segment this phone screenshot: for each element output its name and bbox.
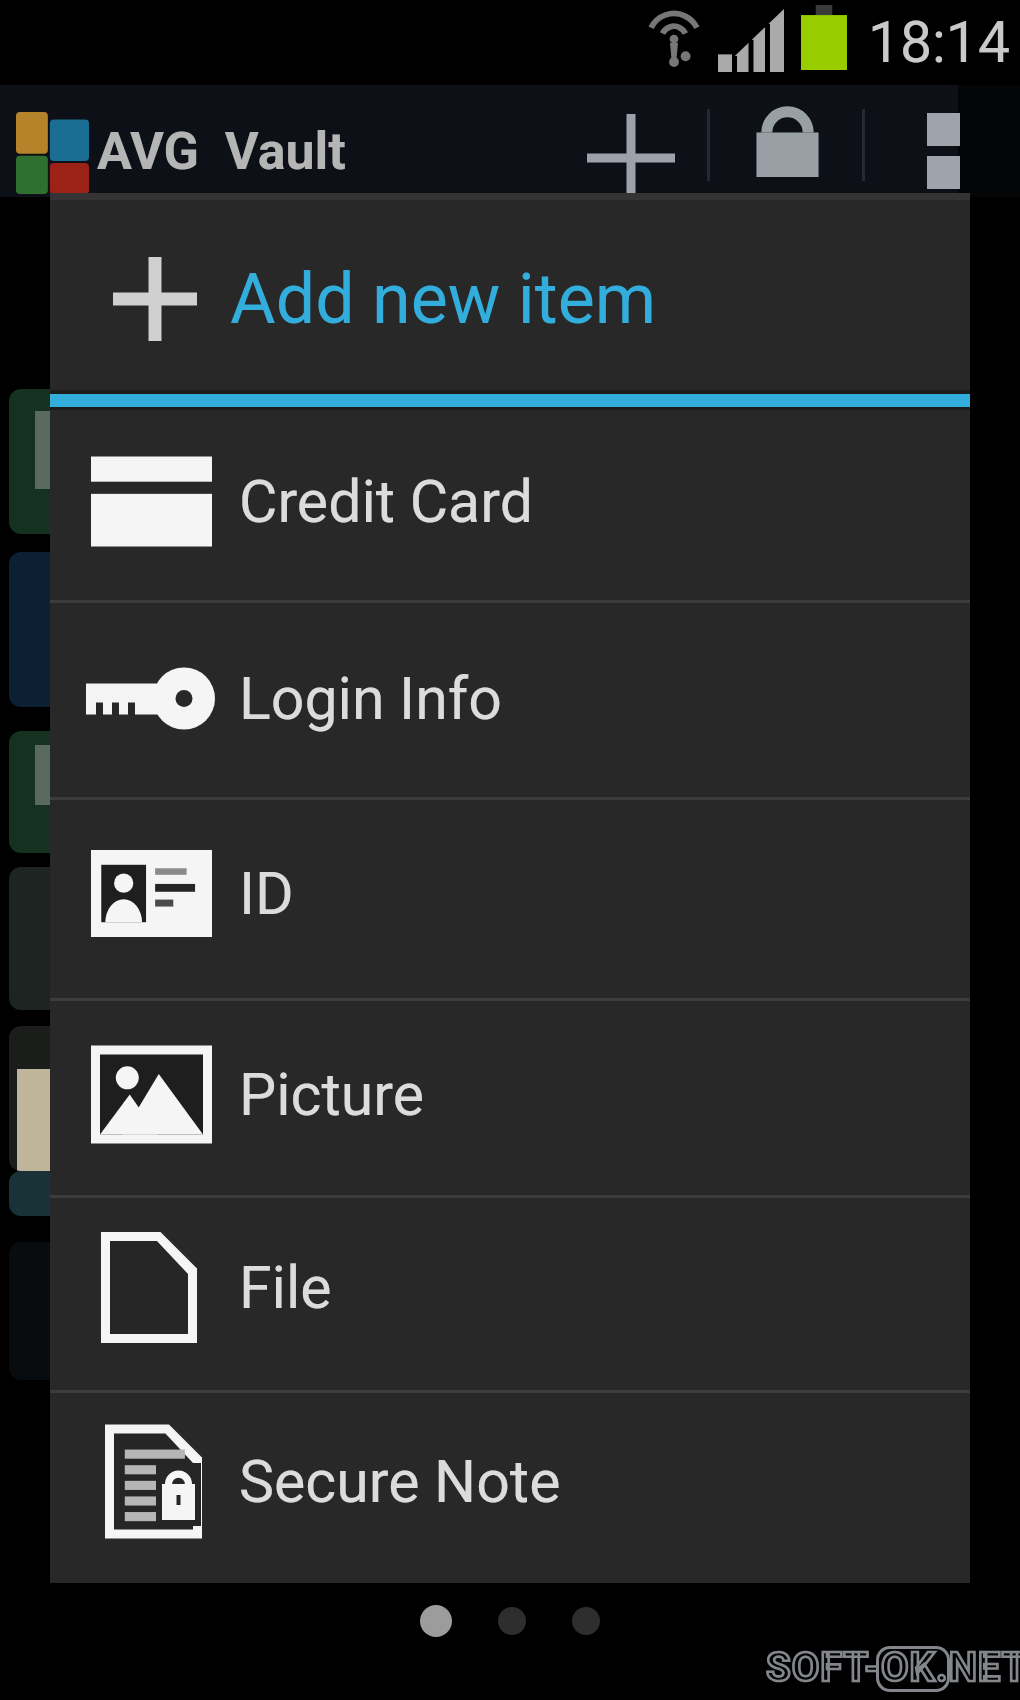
staticText: Add new item [230, 258, 657, 340]
button[interactable]: Login Info [50, 600, 970, 797]
staticText: ID [239, 859, 294, 928]
button[interactable]: Credit Card [50, 403, 970, 600]
button[interactable]: ID [50, 793, 970, 994]
staticText: Picture [239, 1060, 425, 1129]
button[interactable]: Add new item [50, 193, 970, 390]
button[interactable]: Secure Note [50, 1386, 970, 1576]
staticText: Credit Card [239, 467, 533, 536]
staticText: AVG Vault [97, 121, 346, 182]
staticText: 18:14 [868, 9, 1010, 76]
staticText: Login Info [239, 664, 502, 733]
staticText: File [239, 1253, 332, 1322]
button[interactable]: Add [556, 85, 704, 197]
staticText: Secure Note [239, 1447, 561, 1516]
button[interactable]: Lock [717, 85, 857, 197]
button[interactable]: More options [880, 85, 1008, 197]
button[interactable]: File [50, 1190, 970, 1385]
button[interactable]: Picture [50, 996, 970, 1193]
staticText: SOFT-OK.NET [766, 1644, 1020, 1691]
